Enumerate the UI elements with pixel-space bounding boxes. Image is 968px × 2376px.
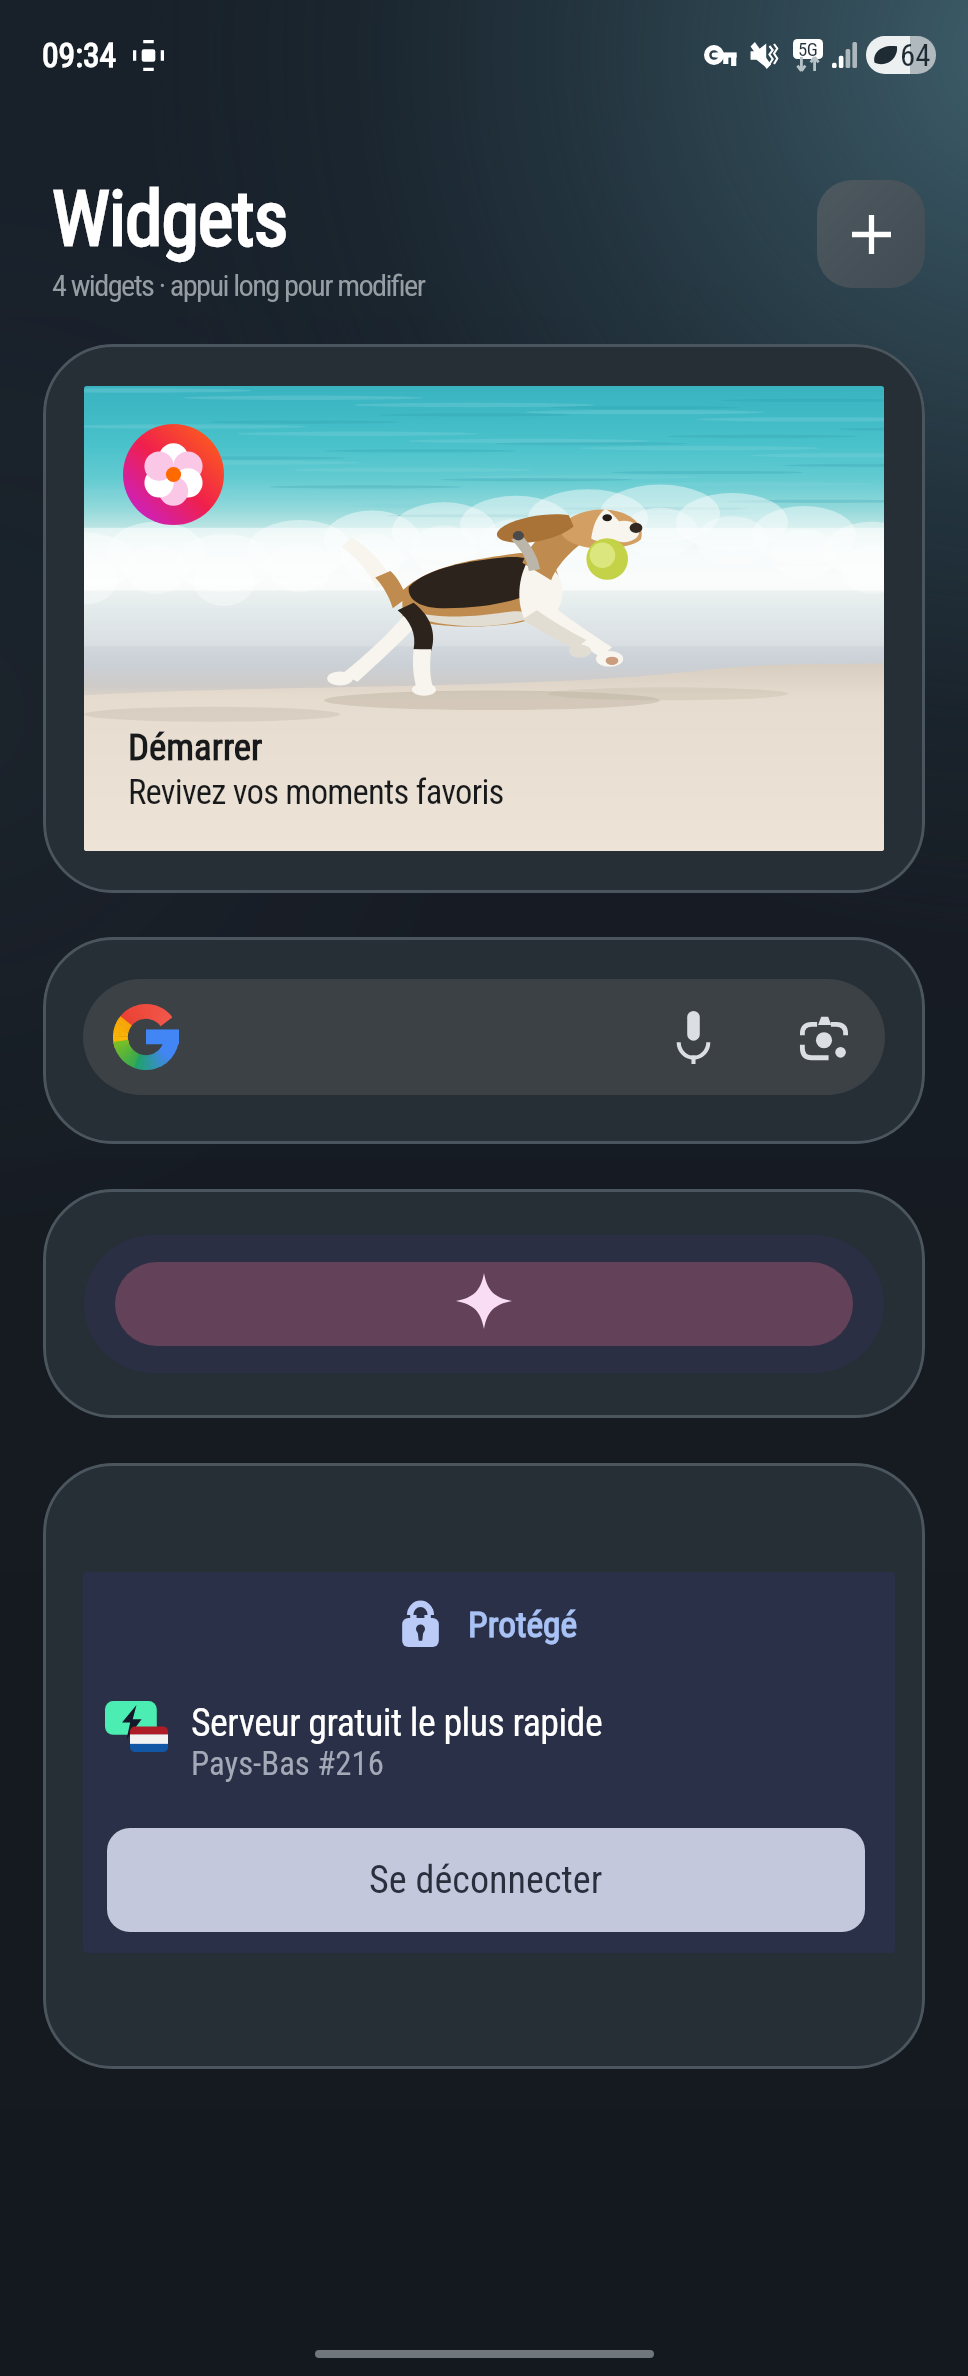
staticText: Se déconnecter — [369, 1858, 603, 1903]
button[interactable]: Démarrer — [43, 344, 925, 893]
staticText: 64 — [900, 37, 931, 73]
button[interactable]: Protégé — [43, 1463, 925, 2069]
other: Google Lens — [801, 1015, 847, 1060]
other: Voice search — [675, 1011, 712, 1064]
staticText: 09:34 — [42, 36, 117, 75]
staticText: Serveur gratuit le plus rapide — [191, 1701, 603, 1745]
staticText: Revivez vos moments favoris — [128, 772, 504, 813]
staticText: Widgets — [52, 175, 288, 264]
staticText: Pays-Bas #216 — [191, 1745, 384, 1783]
button[interactable]: Se déconnecter — [107, 1828, 865, 1932]
staticText: Démarrer — [128, 726, 263, 769]
button[interactable]: Search — [83, 979, 885, 1095]
staticText: 5G — [798, 39, 818, 59]
button[interactable]: Search — [43, 937, 925, 1144]
button[interactable]: Gemini — [43, 1189, 925, 1418]
staticText: Protégé — [468, 1604, 578, 1646]
button[interactable]: Add widget — [817, 180, 925, 288]
button[interactable]: Gemini — [115, 1262, 853, 1346]
staticText: 4 widgets · appui long pour modifier — [52, 268, 425, 304]
